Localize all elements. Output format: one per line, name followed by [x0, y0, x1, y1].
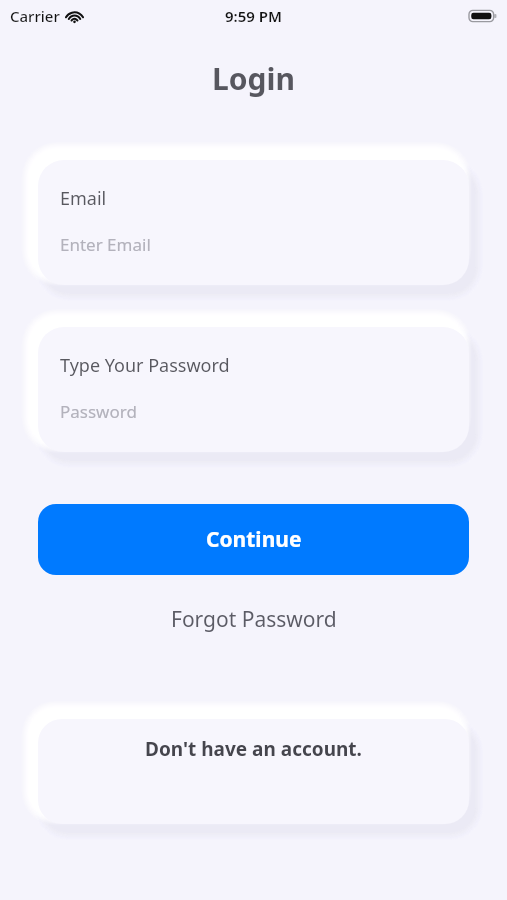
- button[interactable]: Don't have an account.: [38, 719, 469, 824]
- staticText: Continue: [206, 525, 302, 554]
- staticText: Forgot Password: [171, 605, 337, 634]
- staticText: Enter Email: [60, 233, 151, 256]
- staticText: Password: [60, 400, 137, 423]
- button[interactable]: Forgot Password: [38, 605, 469, 634]
- staticText: Don't have an account.: [38, 736, 469, 762]
- staticText: Email: [60, 186, 107, 211]
- staticText: Carrier: [10, 6, 60, 26]
- staticText: Login: [0, 58, 507, 99]
- staticText: 9:59 PM: [225, 6, 282, 26]
- button[interactable]: Email: [38, 160, 469, 285]
- button[interactable]: Type Your Password: [38, 327, 469, 452]
- staticText: Type Your Password: [60, 353, 230, 378]
- button[interactable]: Continue: [38, 504, 469, 575]
